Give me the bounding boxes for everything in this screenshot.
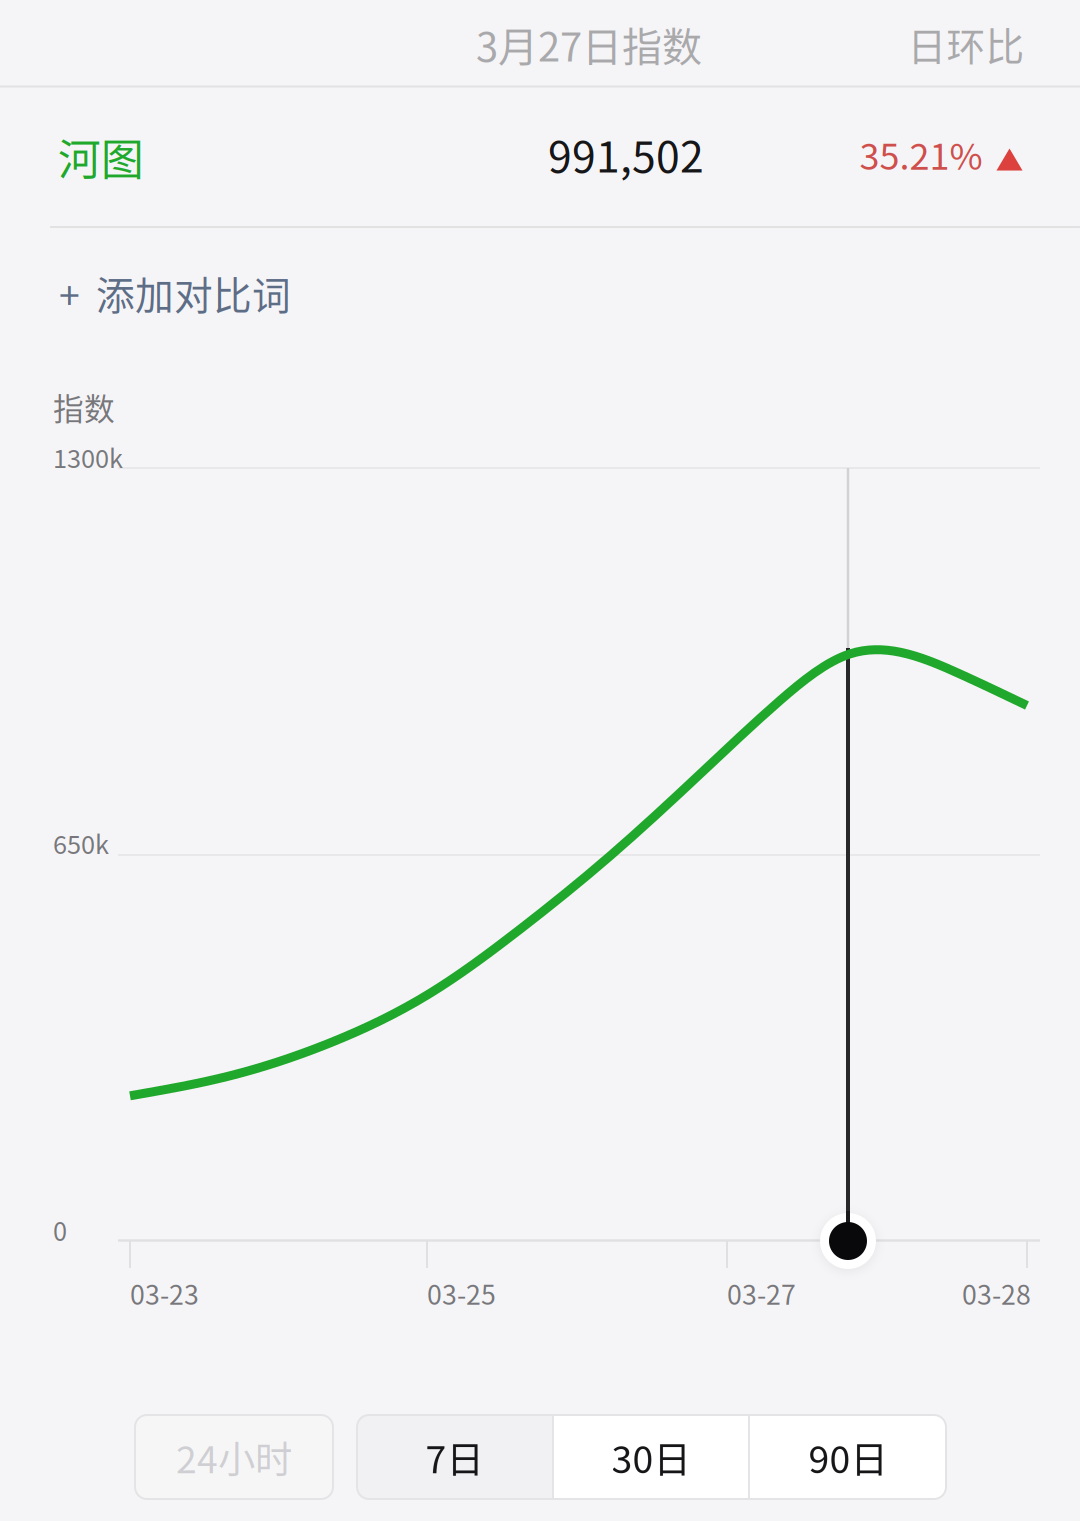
staticText: 03-23 — [130, 1274, 199, 1312]
staticText: 90日 — [808, 1430, 887, 1484]
staticText: 30日 — [611, 1430, 690, 1484]
staticText: 24小时 — [176, 1430, 292, 1484]
staticText: 1300k — [53, 439, 123, 475]
staticText: + — [59, 266, 80, 320]
button[interactable]: + — [59, 245, 349, 341]
staticText: 河图 — [58, 126, 144, 188]
staticText: 添加对比词 — [96, 265, 291, 321]
staticText: 03-28 — [962, 1274, 1031, 1312]
staticText: 650k — [53, 825, 109, 861]
staticText: 日环比 — [907, 16, 1024, 72]
button[interactable]: 30日 — [554, 1415, 748, 1499]
button[interactable]: 35.21% — [859, 118, 1022, 190]
staticText: 7日 — [425, 1430, 483, 1484]
staticText: 03-25 — [427, 1274, 496, 1312]
button[interactable]: 24小时 — [135, 1415, 333, 1499]
staticText: 03-27 — [727, 1274, 796, 1312]
button[interactable]: 90日 — [750, 1415, 946, 1499]
staticText: 3月27日指数 — [476, 15, 702, 73]
staticText: 指数 — [53, 385, 115, 429]
button[interactable]: 7日 — [357, 1415, 552, 1499]
staticText: 991,502 — [548, 123, 704, 185]
staticText: 0 — [53, 1212, 67, 1248]
staticText: 35.21% — [859, 128, 982, 180]
